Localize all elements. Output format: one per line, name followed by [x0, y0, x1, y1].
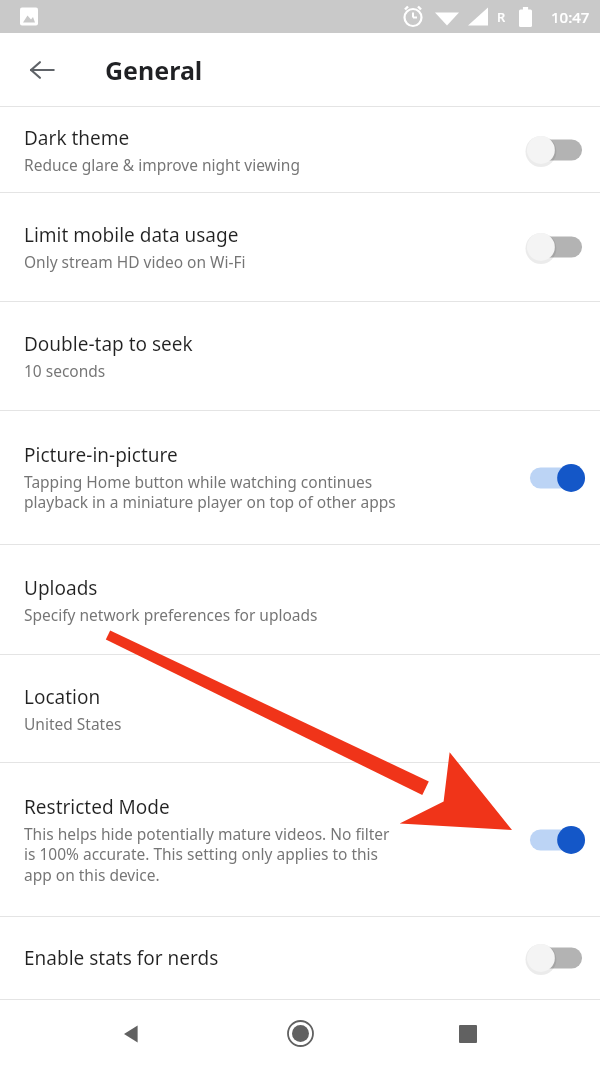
button[interactable]: Dark theme toggle	[524, 126, 588, 174]
button[interactable]: Back	[96, 1000, 168, 1067]
staticText: 10 seconds	[24, 360, 106, 381]
button[interactable]: Dark theme	[0, 107, 600, 192]
staticText: United States	[24, 713, 122, 734]
button[interactable]: Uploads	[0, 545, 600, 654]
staticText: Limit mobile data usage	[24, 222, 239, 248]
button[interactable]: Navigate up	[18, 46, 66, 94]
button[interactable]: Limit mobile data usage toggle	[524, 223, 588, 271]
staticText: Double-tap to seek	[24, 331, 193, 357]
staticText: Location	[24, 684, 101, 710]
staticText: Reduce glare & improve night viewing	[24, 154, 300, 175]
button[interactable]: Picture-in-picture	[0, 411, 600, 544]
button[interactable]: Restricted Mode toggle	[524, 816, 588, 864]
staticText: Tapping Home button while watching conti…	[24, 471, 396, 513]
staticText: Dark theme	[24, 125, 130, 151]
staticText: Uploads	[24, 575, 98, 601]
button[interactable]: Enable stats for nerds toggle	[524, 934, 588, 982]
button[interactable]: Home	[264, 1000, 336, 1067]
button[interactable]: Restricted Mode	[0, 763, 600, 916]
button[interactable]: Recent apps	[432, 1000, 504, 1067]
button[interactable]: Double-tap to seek	[0, 302, 600, 410]
staticText: Restricted Mode	[24, 794, 170, 820]
button[interactable]: Enable stats for nerds	[0, 917, 600, 999]
staticText: General	[105, 53, 203, 87]
staticText: Specify network preferences for uploads	[24, 604, 318, 625]
staticText: Only stream HD video on Wi-Fi	[24, 251, 246, 272]
button[interactable]: Location	[0, 655, 600, 762]
staticText: 10:47	[551, 7, 590, 27]
button[interactable]: Picture-in-picture toggle	[524, 454, 588, 502]
staticText: This helps hide potentially mature video…	[24, 823, 390, 886]
staticText: Enable stats for nerds	[24, 945, 219, 971]
staticText: Picture-in-picture	[24, 442, 178, 468]
staticText: R	[497, 8, 506, 26]
button[interactable]: Limit mobile data usage	[0, 193, 600, 301]
